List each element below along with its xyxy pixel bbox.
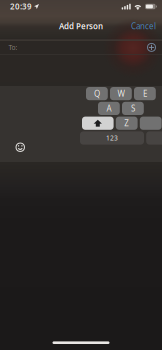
button[interactable] bbox=[140, 117, 162, 130]
button[interactable]: Cancel bbox=[125, 17, 162, 35]
button[interactable]: A bbox=[98, 102, 120, 115]
staticText: W bbox=[117, 88, 124, 99]
staticText: To: bbox=[8, 43, 17, 52]
staticText: A bbox=[106, 103, 111, 114]
button[interactable]: Add contact bbox=[146, 42, 162, 52]
button[interactable] bbox=[82, 117, 114, 130]
staticText: 123 bbox=[106, 134, 118, 142]
button[interactable] bbox=[146, 131, 162, 145]
staticText: S bbox=[131, 103, 135, 114]
button[interactable]: W bbox=[110, 87, 132, 100]
button[interactable]: Z bbox=[116, 117, 138, 130]
staticText: 20:39 bbox=[10, 1, 32, 12]
button[interactable]: Q bbox=[86, 87, 108, 100]
button[interactable]: Emoji keyboard bbox=[13, 140, 27, 154]
button[interactable]: S bbox=[122, 102, 144, 115]
staticText: Add Person bbox=[59, 21, 103, 31]
button[interactable]: 123 bbox=[80, 131, 144, 145]
staticText: Z bbox=[124, 118, 129, 128]
button[interactable]: E bbox=[134, 87, 156, 100]
staticText: Q bbox=[94, 88, 100, 99]
staticText: Cancel bbox=[131, 21, 156, 31]
staticText: E bbox=[143, 88, 147, 99]
